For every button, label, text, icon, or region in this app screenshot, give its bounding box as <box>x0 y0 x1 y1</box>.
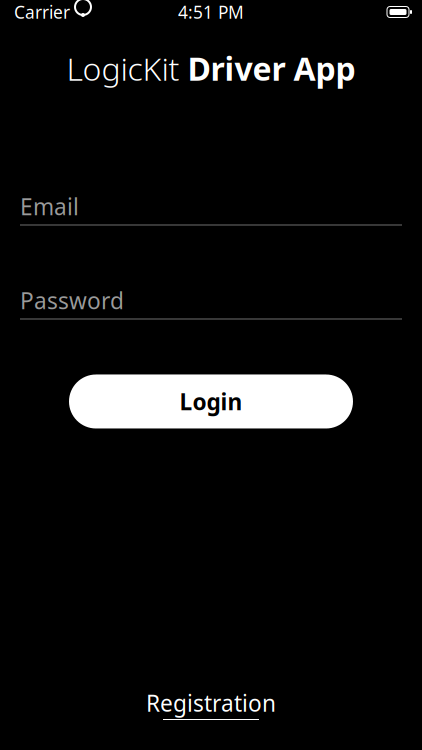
staticText: Login <box>179 386 242 416</box>
button[interactable]: Registration <box>138 684 284 724</box>
staticText: Registration <box>146 688 276 718</box>
staticText: LogicKit <box>66 47 187 89</box>
staticText: Password <box>20 285 124 315</box>
staticText: 4:51 PM <box>178 0 244 23</box>
staticText: Email <box>20 191 79 221</box>
staticText: Carrier <box>14 0 70 23</box>
staticText: Driver App <box>187 47 355 89</box>
button[interactable]: Login <box>69 374 353 428</box>
